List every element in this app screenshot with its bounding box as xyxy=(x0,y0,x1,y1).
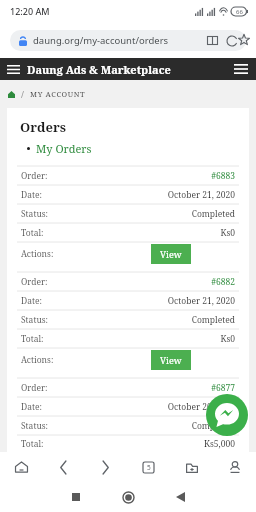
staticText: Actions: xyxy=(21,248,54,260)
staticText: Daung Ads & Marketplace xyxy=(27,62,226,77)
button[interactable]: Recents xyxy=(50,482,102,512)
staticText: Completed xyxy=(191,314,235,326)
staticText: #6883 xyxy=(211,170,235,182)
staticText: Order: xyxy=(21,276,48,288)
staticText: 12:20 AM xyxy=(10,5,50,17)
button[interactable]: Home xyxy=(8,91,15,98)
staticText: Order: xyxy=(21,382,48,394)
staticText: Total: xyxy=(21,227,44,239)
staticText: Orders xyxy=(20,118,66,136)
staticText: View xyxy=(160,354,182,366)
button[interactable]: More options xyxy=(234,58,248,80)
button[interactable]: Downloads xyxy=(170,452,213,482)
button[interactable]: My Orders xyxy=(27,141,92,156)
staticText: October 20, 2020 xyxy=(167,401,235,413)
staticText: Date: xyxy=(21,295,42,307)
button[interactable]: Reload xyxy=(227,36,237,46)
staticText: Completed xyxy=(191,208,235,220)
staticText: Ks0 xyxy=(220,227,235,239)
button[interactable]: Back xyxy=(154,482,206,512)
button[interactable]: Bookmark xyxy=(238,34,250,46)
button[interactable]: Messenger chat xyxy=(206,394,248,436)
staticText: October 21, 2020 xyxy=(167,189,235,201)
staticText: Ks0 xyxy=(220,333,235,345)
staticText: October 21, 2020 xyxy=(167,295,235,307)
staticText: 66 xyxy=(236,8,243,16)
staticText: View xyxy=(160,248,182,260)
staticText: daung.org/my-account/orders xyxy=(33,34,207,47)
button[interactable]: daung.org/my-account/orders xyxy=(10,30,246,51)
button[interactable]: Back xyxy=(42,452,84,482)
staticText: Actions: xyxy=(21,354,54,366)
staticText: Ks5,000 xyxy=(204,438,235,450)
staticText: 5 xyxy=(147,463,151,472)
staticText: Status: xyxy=(21,420,49,432)
staticText: #6882 xyxy=(211,276,235,288)
button[interactable]: Home xyxy=(0,452,42,482)
button[interactable]: Reader mode xyxy=(207,36,218,45)
button[interactable]: Home xyxy=(102,482,154,512)
button[interactable]: Menu xyxy=(7,58,20,80)
staticText: Total: xyxy=(21,438,44,450)
button[interactable]: Account xyxy=(213,452,256,482)
staticText: Date: xyxy=(21,401,42,413)
button[interactable]: View xyxy=(151,350,191,370)
button[interactable]: Forward xyxy=(84,452,127,482)
button[interactable]: Tabs xyxy=(127,452,170,482)
staticText: Status: xyxy=(21,314,49,326)
staticText: / xyxy=(21,89,24,100)
staticText: Total: xyxy=(21,333,44,345)
staticText: Completed xyxy=(191,420,235,432)
staticText: My Orders xyxy=(36,141,92,156)
staticText: Status: xyxy=(21,208,49,220)
staticText: Order: xyxy=(21,170,48,182)
button[interactable]: MY ACCOUNT xyxy=(30,89,86,99)
button[interactable]: View xyxy=(151,244,191,264)
staticText: #6877 xyxy=(211,382,235,394)
staticText: Date: xyxy=(21,189,42,201)
